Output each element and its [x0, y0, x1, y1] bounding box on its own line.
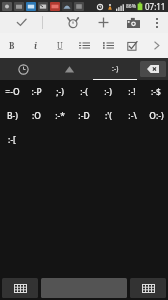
button[interactable]: :-(	[72, 80, 96, 104]
staticText: ;-)	[56, 86, 64, 98]
button[interactable]: :-D	[72, 104, 96, 128]
button[interactable]: Switch keyboard	[2, 278, 38, 298]
button[interactable]: Expand	[144, 33, 168, 58]
button[interactable]: :-$	[144, 80, 168, 104]
staticText: :-[	[8, 134, 16, 146]
button[interactable]: :O	[24, 104, 48, 128]
button[interactable]: :-P	[24, 80, 48, 104]
staticText: :-)	[104, 86, 112, 98]
staticText: :-*	[55, 110, 65, 122]
button[interactable]: :'(	[96, 104, 120, 128]
button[interactable]: :-\	[120, 104, 144, 128]
staticText: :-P	[31, 86, 42, 98]
staticText: :-\	[128, 110, 137, 122]
staticText: 86%	[126, 3, 136, 10]
button[interactable]: Hide keyboard	[130, 278, 166, 298]
button[interactable]: Reminder	[58, 12, 88, 33]
button[interactable]: Done	[0, 12, 42, 33]
button[interactable]: :-)	[92, 58, 138, 80]
staticText: :-)	[112, 64, 119, 74]
button[interactable]: Bulleted list	[96, 33, 120, 58]
button[interactable]: :-)	[96, 80, 120, 104]
button[interactable]: Checklist	[120, 33, 144, 58]
button[interactable]: Italic	[24, 33, 48, 58]
button[interactable]: :-[	[0, 128, 24, 152]
button[interactable]: Backspace	[140, 61, 166, 77]
button[interactable]: Add	[88, 12, 118, 33]
button[interactable]: More options	[148, 12, 166, 33]
button[interactable]: Underline	[48, 33, 72, 58]
button[interactable]: :-*	[48, 104, 72, 128]
staticText: B-)	[7, 110, 18, 122]
staticText: =-O	[5, 86, 20, 98]
staticText: :O	[32, 110, 41, 122]
staticText: :-!	[128, 86, 136, 98]
button[interactable]: ;-)	[48, 80, 72, 104]
staticText: O:-)	[149, 110, 164, 122]
button[interactable]: Bold	[0, 33, 24, 58]
staticText: :-$	[151, 86, 161, 98]
button[interactable]: =-O	[0, 80, 24, 104]
staticText: B	[9, 40, 15, 51]
staticText: :'(	[105, 110, 112, 122]
staticText: :-(	[80, 86, 88, 98]
staticText: U	[57, 40, 63, 51]
staticText: :-D	[78, 110, 90, 122]
button[interactable]: O:-)	[144, 104, 168, 128]
staticText: i	[34, 40, 38, 52]
button[interactable]: :-!	[120, 80, 144, 104]
button[interactable]: Camera	[118, 12, 148, 33]
button[interactable]: Recent emoticons	[0, 58, 46, 80]
button[interactable]: Symbols	[46, 58, 92, 80]
button[interactable]: Numbered list	[72, 33, 96, 58]
button[interactable]: B-)	[0, 104, 24, 128]
staticText: 07:11	[145, 1, 166, 12]
